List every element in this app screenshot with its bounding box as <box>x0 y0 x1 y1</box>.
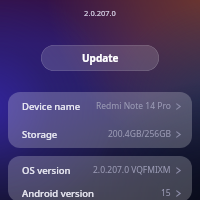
button[interactable]: Android version <box>8 184 192 200</box>
staticText: 15 <box>161 187 171 199</box>
button[interactable]: Storage <box>8 120 192 148</box>
staticText: Update <box>82 51 119 65</box>
button[interactable]: OS version <box>8 156 192 184</box>
staticText: Redmi Note 14 Pro <box>96 100 171 112</box>
button[interactable]: Update <box>41 45 159 71</box>
staticText: 2.0.207.0 VQFMIXM <box>93 164 171 176</box>
button[interactable]: Device name <box>8 92 192 120</box>
staticText: 200.4GB/256GB <box>108 128 171 140</box>
staticText: OS version <box>22 164 71 177</box>
staticText: 2.0.207.0 <box>84 8 116 18</box>
staticText: Android version <box>22 187 95 200</box>
staticText: Storage <box>22 128 58 141</box>
staticText: Device name <box>22 100 81 113</box>
